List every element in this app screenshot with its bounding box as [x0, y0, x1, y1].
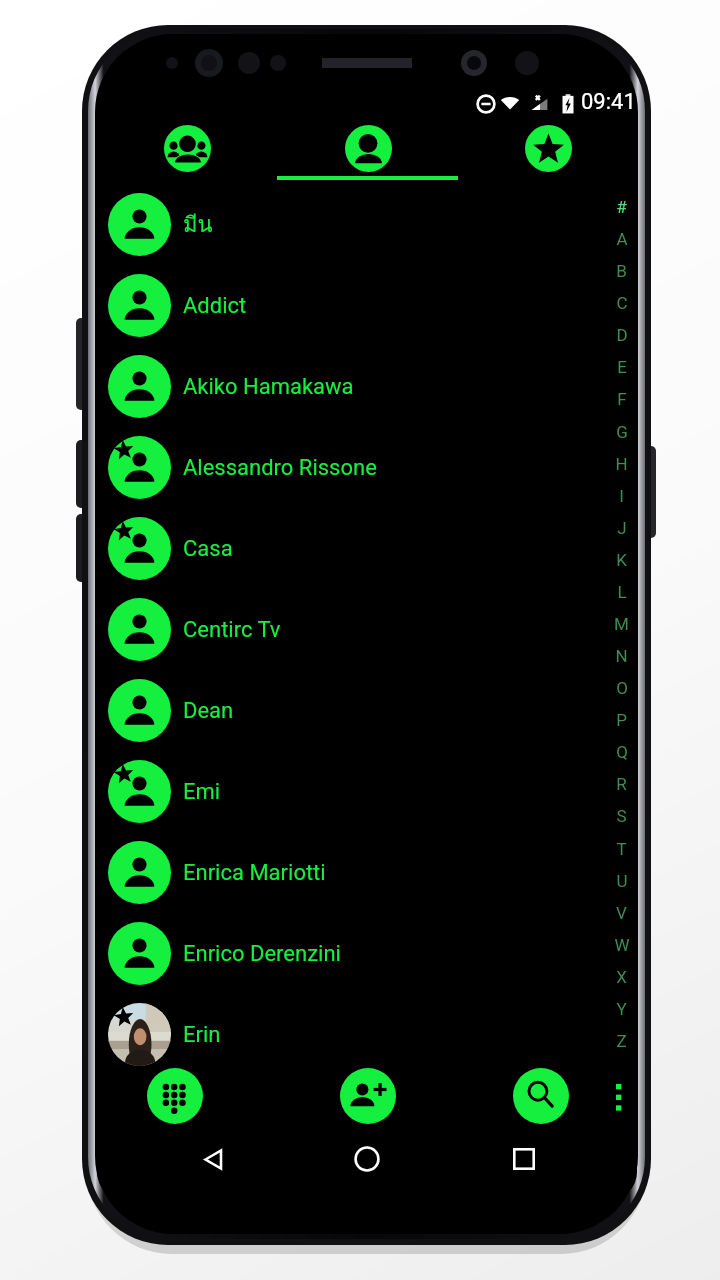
staticText: Enrica Mariotti [183, 860, 326, 886]
button[interactable]: Search [513, 1068, 569, 1124]
staticText: X [616, 967, 627, 987]
staticText: R [616, 774, 627, 794]
staticText: Addict [183, 293, 247, 319]
staticText: Centirc Tv [183, 617, 281, 643]
button[interactable]: Add contact [340, 1068, 396, 1124]
button[interactable]: Contacts [333, 117, 403, 179]
staticText: # [616, 197, 627, 217]
staticText: 09:41 [581, 89, 636, 115]
staticText: L [617, 582, 627, 602]
button[interactable]: Favorites [513, 117, 583, 179]
staticText: W [614, 935, 630, 955]
button[interactable]: Alessandro Rissone [97, 427, 637, 508]
button[interactable]: Casa [97, 508, 637, 589]
button[interactable]: Dialpad [147, 1068, 203, 1124]
staticText: Emi [183, 779, 221, 805]
staticText: K [616, 550, 627, 570]
staticText: Alessandro Rissone [183, 455, 377, 481]
button[interactable]: Dean [97, 670, 637, 751]
button[interactable]: มีน [97, 184, 637, 265]
staticText: N [615, 646, 628, 666]
staticText: Dean [183, 698, 234, 724]
staticText: I [619, 486, 624, 506]
staticText: F [617, 389, 627, 409]
staticText: S [616, 806, 627, 826]
staticText: B [616, 261, 627, 281]
button[interactable]: Enrica Mariotti [97, 832, 637, 913]
staticText: O [616, 678, 628, 698]
staticText: H [615, 454, 628, 474]
staticText: D [616, 325, 628, 345]
staticText: J [617, 518, 627, 538]
button[interactable]: Addict [97, 265, 637, 346]
button[interactable]: Emi [97, 751, 637, 832]
staticText: C [616, 293, 628, 313]
staticText: A [616, 229, 628, 249]
staticText: U [616, 871, 628, 891]
button[interactable]: More options [604, 1073, 634, 1121]
button[interactable]: Erin [97, 994, 637, 1075]
staticText: M [614, 614, 629, 634]
button[interactable]: Groups [152, 117, 222, 179]
button[interactable]: Enrico Derenzini [97, 913, 637, 994]
button[interactable]: Home [339, 1131, 395, 1187]
staticText: Y [616, 999, 627, 1019]
button[interactable]: Recents [496, 1131, 552, 1187]
staticText: E [617, 357, 627, 377]
staticText: Akiko Hamakawa [183, 374, 354, 400]
staticText: V [616, 903, 627, 923]
staticText: P [616, 710, 627, 730]
button[interactable]: Back [185, 1131, 241, 1187]
button[interactable]: Centirc Tv [97, 589, 637, 670]
staticText: Q [616, 742, 628, 762]
staticText: Z [616, 1031, 627, 1051]
staticText: Erin [183, 1022, 221, 1048]
staticText: มีน [183, 207, 213, 242]
staticText: T [616, 839, 627, 859]
button[interactable]: Akiko Hamakawa [97, 346, 637, 427]
staticText: Enrico Derenzini [183, 941, 341, 967]
staticText: Casa [183, 536, 233, 562]
staticText: G [616, 422, 628, 442]
